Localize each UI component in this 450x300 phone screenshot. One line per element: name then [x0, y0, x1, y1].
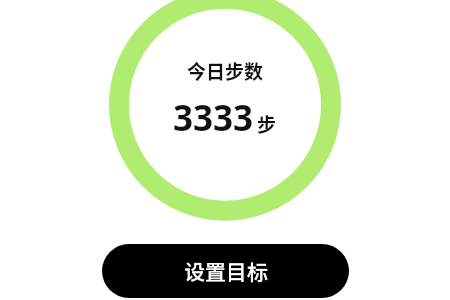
- staticText: 3333: [173, 94, 254, 142]
- staticText: 步: [257, 110, 277, 138]
- staticText: 今日步数: [187, 57, 264, 85]
- button[interactable]: 设置目标: [102, 244, 349, 298]
- staticText: 设置目标: [184, 256, 268, 286]
